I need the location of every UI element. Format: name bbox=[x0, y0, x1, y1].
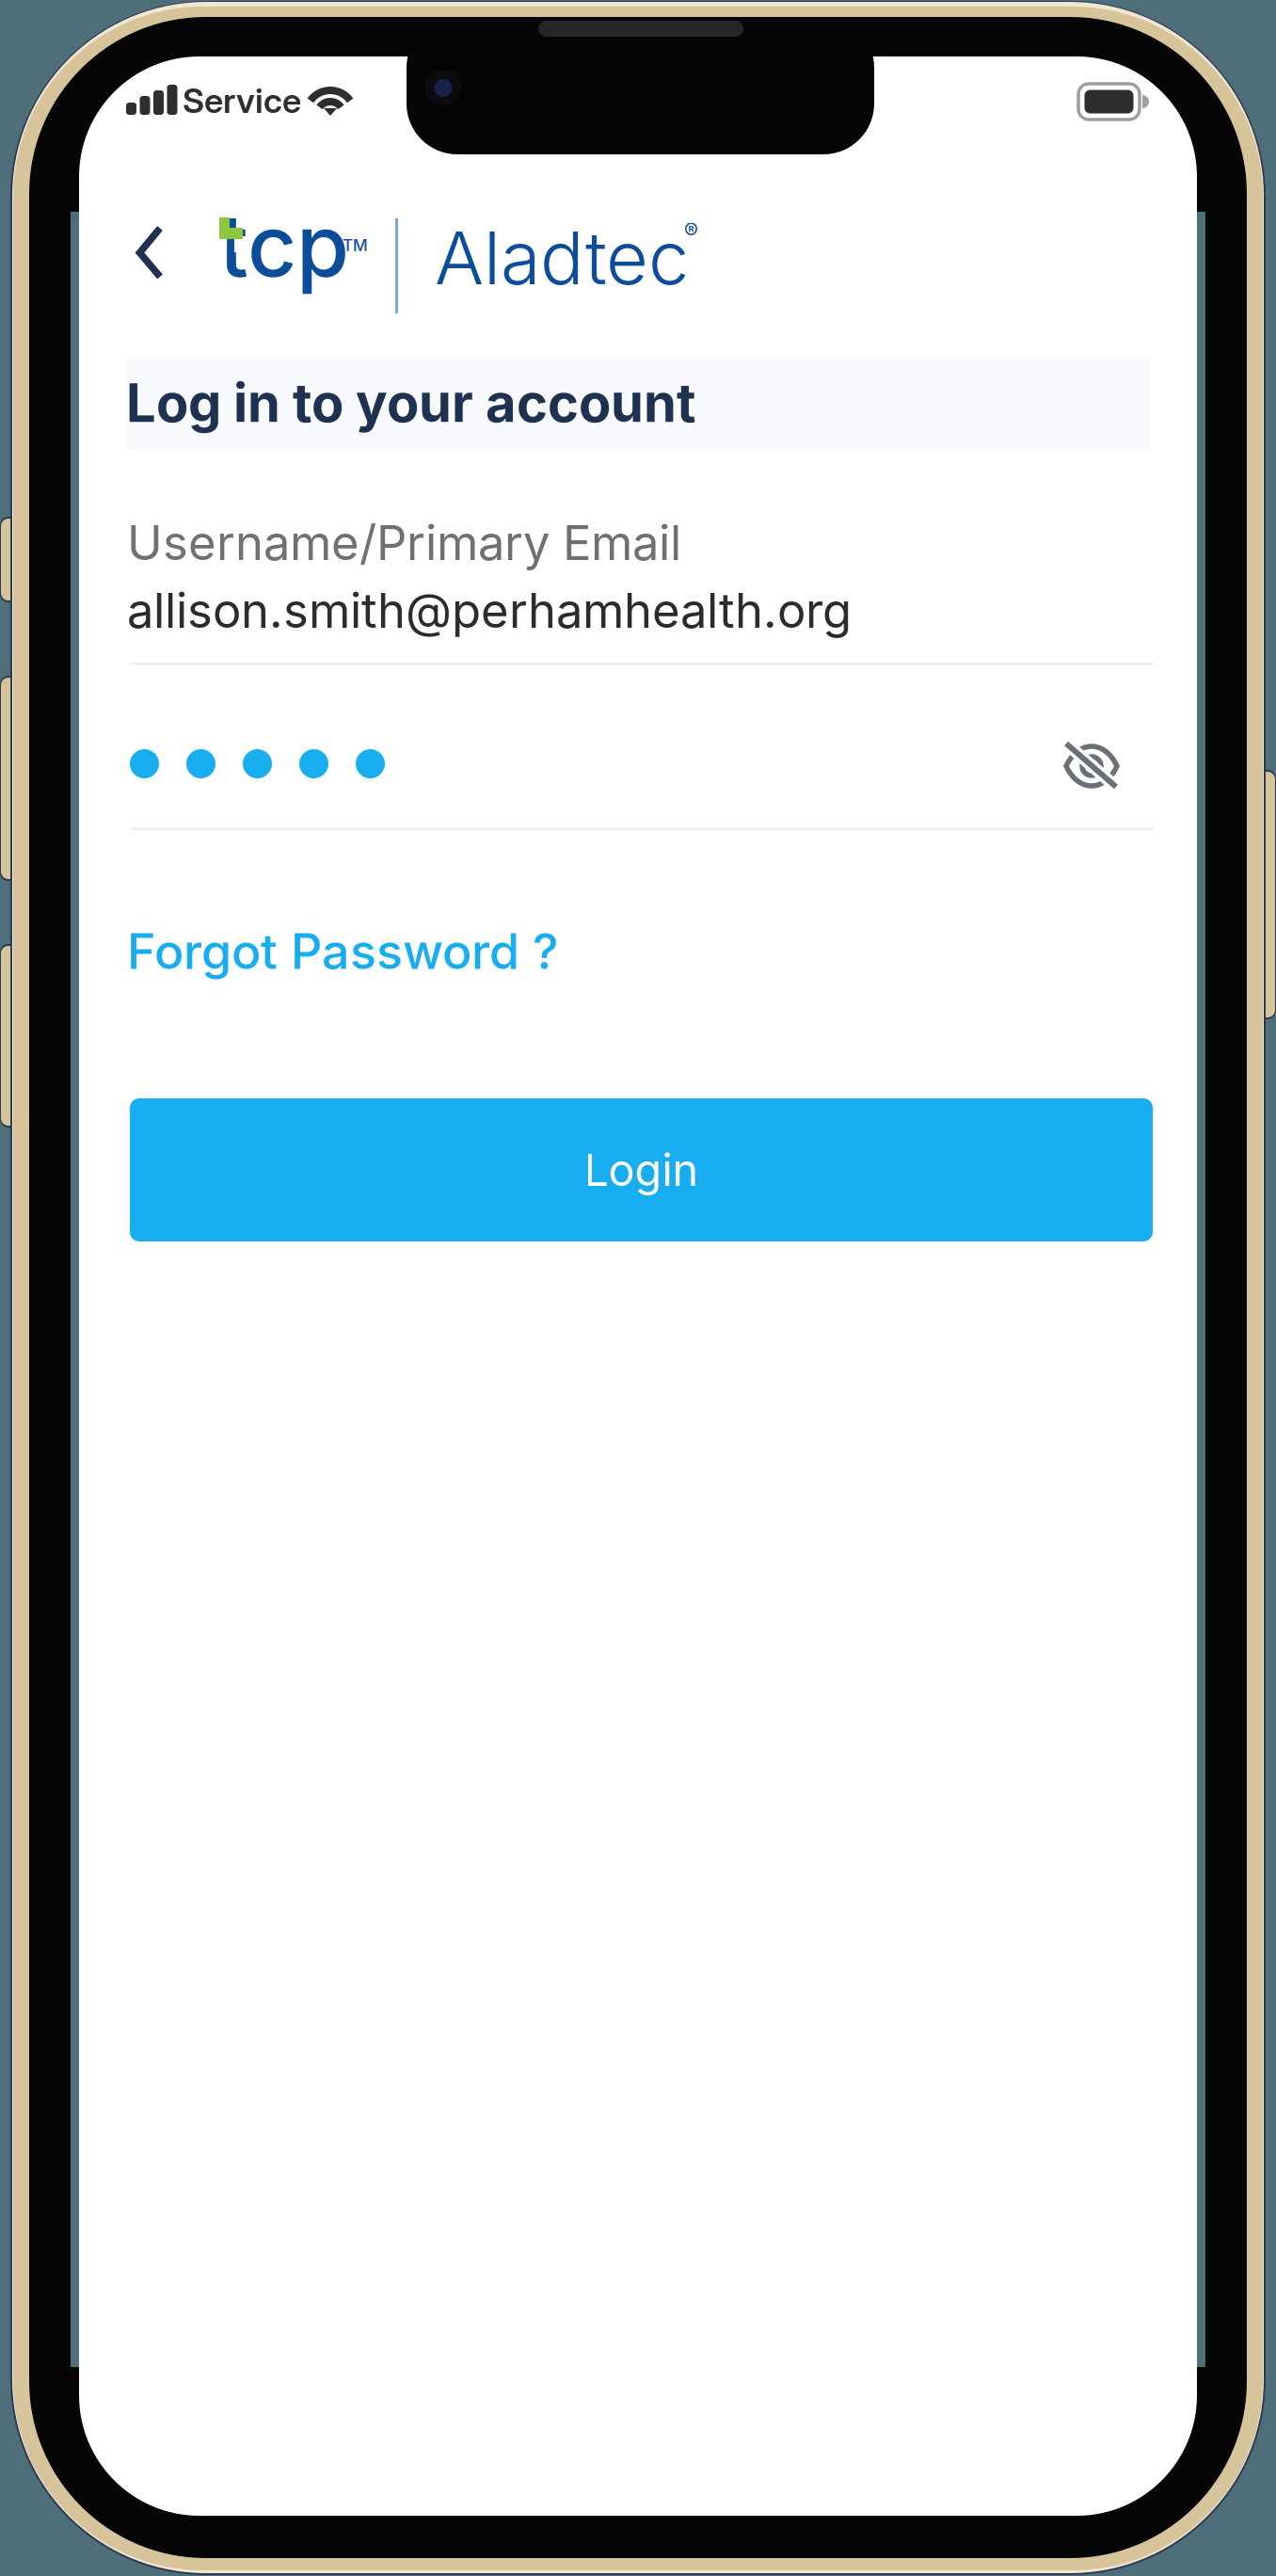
button[interactable]: Forgot Password ? bbox=[79, 56, 510, 116]
staticText: Forgot Password ? bbox=[127, 921, 558, 981]
staticText: Aladtec bbox=[435, 214, 689, 302]
staticText: allison.smith@perhamhealth.org bbox=[127, 582, 852, 639]
button[interactable]: Login bbox=[79, 56, 1102, 200]
staticText: Log in to your account bbox=[126, 371, 696, 435]
staticText: ® bbox=[684, 218, 698, 244]
staticText: Login bbox=[584, 1143, 699, 1197]
button[interactable]: Show password bbox=[79, 56, 134, 102]
staticText: Service bbox=[183, 80, 301, 121]
staticText: tcp bbox=[219, 194, 349, 297]
button[interactable]: Back bbox=[79, 56, 106, 112]
staticText: Username/Primary Email bbox=[127, 514, 681, 572]
staticText: TM bbox=[343, 235, 368, 255]
